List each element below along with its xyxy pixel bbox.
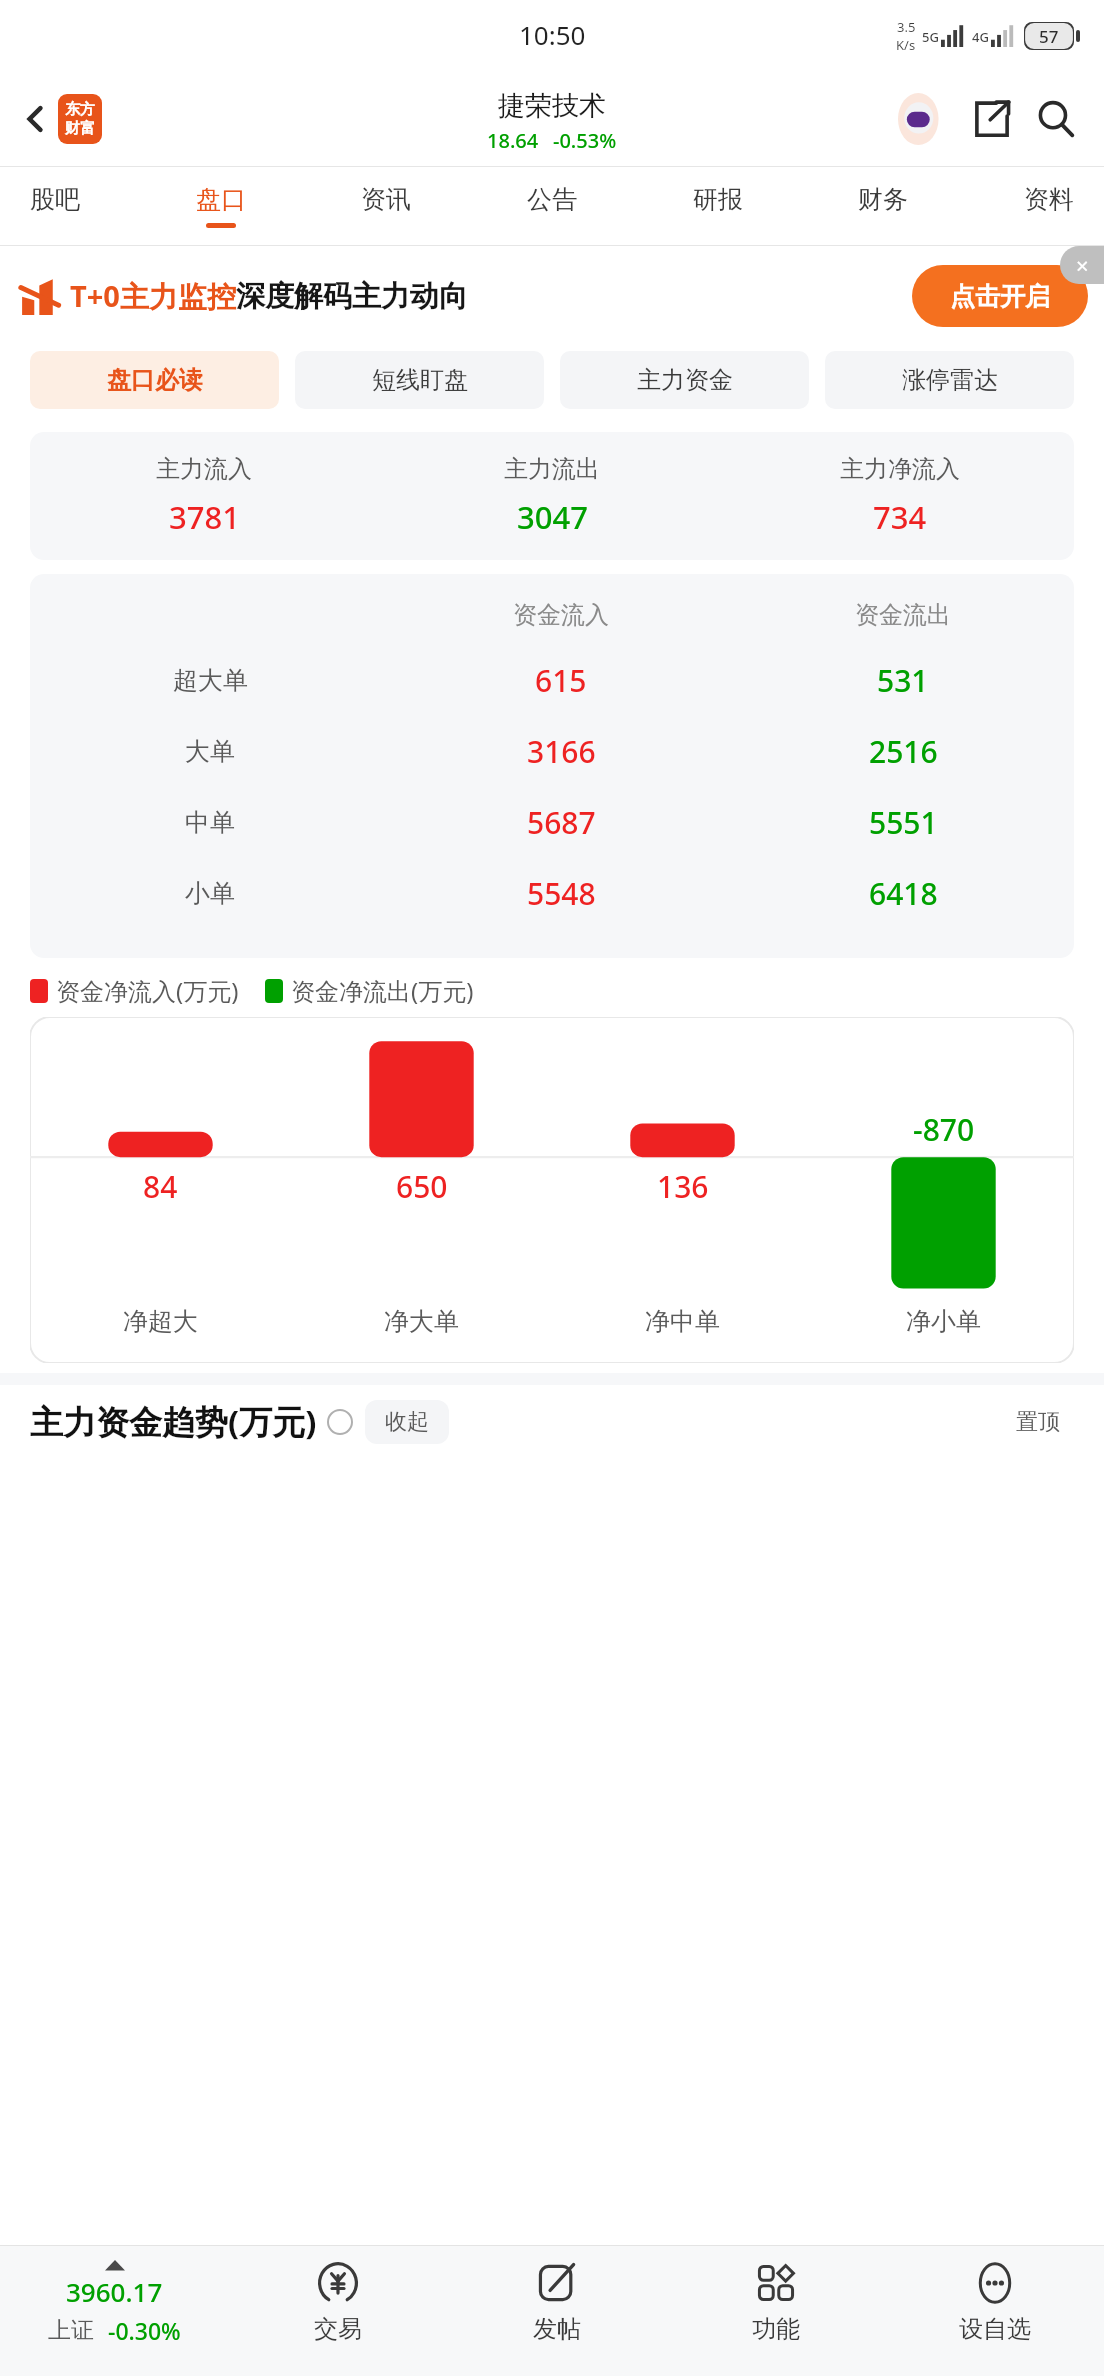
staticText: 净小单 <box>906 1306 981 1337</box>
staticText: 主力资金 <box>637 365 733 395</box>
staticText: 3166 <box>527 731 596 772</box>
button[interactable]: Close ad <box>1060 246 1104 284</box>
staticText: 净中单 <box>645 1306 720 1337</box>
staticText: 资讯 <box>361 184 411 215</box>
staticText: 公告 <box>527 184 577 215</box>
button[interactable]: 资料 <box>1012 180 1086 232</box>
button[interactable]: 点击开启 <box>912 265 1088 327</box>
staticText: 超大单 <box>173 665 248 696</box>
staticText: 财务 <box>858 184 908 215</box>
button[interactable]: 财务 <box>846 180 920 232</box>
staticText: 57 <box>1039 25 1059 48</box>
staticText: 主力净流入 <box>840 454 960 484</box>
staticText: 5551 <box>869 802 938 843</box>
button[interactable]: T+0主力监控 <box>0 246 1104 346</box>
staticText: 涨停雷达 <box>902 365 998 395</box>
button[interactable]: 盘口 <box>184 180 258 232</box>
staticText: 净超大 <box>123 1306 198 1337</box>
button[interactable]: 收起 <box>365 1400 449 1444</box>
staticText: 短线盯盘 <box>372 365 468 395</box>
staticText: 主力流入 <box>156 454 252 484</box>
staticText: × <box>1076 250 1089 280</box>
staticText: 股吧 <box>30 184 80 215</box>
staticText: 3960.17 <box>66 2274 163 2309</box>
staticText: 深度解码主力动向 <box>236 278 468 315</box>
staticText: 84 <box>143 1166 178 1207</box>
staticText: 净大单 <box>384 1306 459 1337</box>
button[interactable]: Back <box>10 88 110 150</box>
button[interactable]: 研报 <box>681 180 755 232</box>
staticText: 盘口必读 <box>107 365 203 395</box>
staticText: 上证 <box>48 2316 94 2345</box>
staticText: 小单 <box>185 878 235 909</box>
staticText: 大单 <box>185 736 235 767</box>
button[interactable]: 发帖 <box>447 2246 666 2376</box>
staticText: 中单 <box>185 807 235 838</box>
staticText: 设自选 <box>959 2314 1031 2344</box>
staticText: 资金净流入(万元) <box>56 974 239 1007</box>
button[interactable]: 短线盯盘 <box>295 351 544 409</box>
staticText: 5G <box>922 28 939 46</box>
button[interactable]: 股吧 <box>18 180 92 232</box>
staticText: 财富 <box>65 119 95 138</box>
staticText: 主力资金趋势(万元) <box>30 1399 317 1444</box>
button[interactable]: 涨停雷达 <box>825 351 1074 409</box>
staticText: T+0主力监控 <box>70 276 236 316</box>
staticText: 研报 <box>693 184 743 215</box>
button[interactable]: 盘口必读 <box>30 351 279 409</box>
staticText: 6418 <box>869 873 938 914</box>
staticText: 点击开启 <box>950 281 1050 312</box>
staticText: -0.30% <box>108 2315 181 2346</box>
staticText: 3.5 <box>897 18 916 36</box>
staticText: 主力流出 <box>504 454 600 484</box>
button[interactable]: 主力资金 <box>560 351 809 409</box>
staticText: 5548 <box>527 873 596 914</box>
button[interactable]: 主力流入 <box>30 432 1074 560</box>
button[interactable]: 资讯 <box>349 180 423 232</box>
staticText: 捷荣技术 <box>498 89 606 123</box>
button[interactable]: Assistant <box>896 91 952 147</box>
staticText: 资金流出 <box>855 600 951 630</box>
staticText: -870 <box>913 1109 975 1150</box>
button[interactable]: 置顶 <box>998 1400 1078 1444</box>
staticText: 18.64 <box>487 127 539 154</box>
staticText: 3781 <box>169 496 240 538</box>
staticText: 发帖 <box>533 2314 581 2344</box>
button[interactable]: 3960.17 <box>0 2246 229 2376</box>
staticText: 5687 <box>527 802 596 843</box>
staticText: -0.53% <box>553 127 617 154</box>
button[interactable]: 设自选 <box>885 2246 1104 2376</box>
button[interactable]: Search <box>1030 93 1082 145</box>
button[interactable]: 功能 <box>666 2246 885 2376</box>
button[interactable]: 交易 <box>229 2246 447 2376</box>
staticText: 资金净流出(万元) <box>291 974 474 1007</box>
staticText: 615 <box>535 660 587 701</box>
staticText: 东方 <box>65 100 95 119</box>
staticText: 资料 <box>1024 184 1074 215</box>
staticText: 交易 <box>314 2314 362 2344</box>
staticText: 136 <box>657 1166 709 1207</box>
staticText: 收起 <box>385 1408 429 1436</box>
button[interactable]: 84 <box>30 1017 1074 1363</box>
button[interactable]: Share <box>966 93 1018 145</box>
staticText: 734 <box>873 496 927 538</box>
staticText: 盘口 <box>196 184 246 215</box>
staticText: 531 <box>877 660 929 701</box>
staticText: 功能 <box>752 2314 800 2344</box>
staticText: 置顶 <box>1016 1408 1060 1436</box>
staticText: K/s <box>896 36 916 54</box>
staticText: 4G <box>972 28 989 46</box>
staticText: 650 <box>396 1166 448 1207</box>
button[interactable]: 公告 <box>515 180 589 232</box>
staticText: 10:50 <box>519 17 586 52</box>
staticText: 资金流入 <box>513 600 609 630</box>
staticText: 3047 <box>517 496 588 538</box>
staticText: 2516 <box>869 731 938 772</box>
button[interactable]: 资金流入 <box>30 574 1074 958</box>
